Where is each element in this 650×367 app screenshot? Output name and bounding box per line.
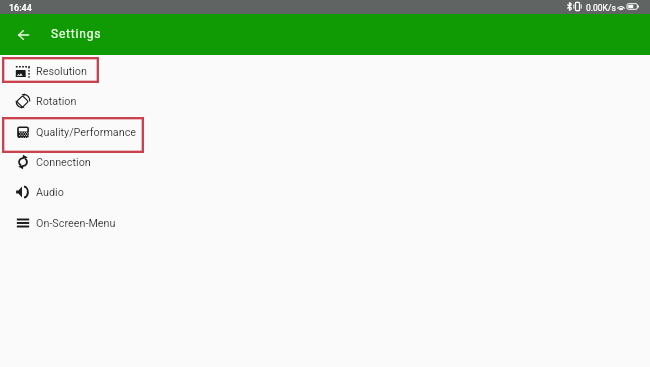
button[interactable]: Resolution (0, 56, 650, 86)
button[interactable]: On-Screen-Menu (0, 208, 650, 238)
button[interactable]: Rotation (0, 86, 650, 116)
staticText: Rotation (36, 95, 77, 108)
staticText: Resolution (36, 65, 87, 78)
button[interactable]: Quality/Performance (0, 117, 650, 147)
staticText: Connection (36, 156, 91, 169)
button[interactable]: Navigate up (6, 14, 40, 55)
button[interactable]: Connection (0, 147, 650, 177)
staticText: Settings (51, 27, 102, 41)
staticText: Quality/Performance (36, 126, 137, 139)
staticText: On-Screen-Menu (36, 217, 116, 230)
staticText: Audio (36, 186, 64, 199)
staticText: 16:44 (9, 3, 32, 14)
staticText: 0.00K/s (586, 3, 616, 13)
button[interactable]: Audio (0, 177, 650, 207)
